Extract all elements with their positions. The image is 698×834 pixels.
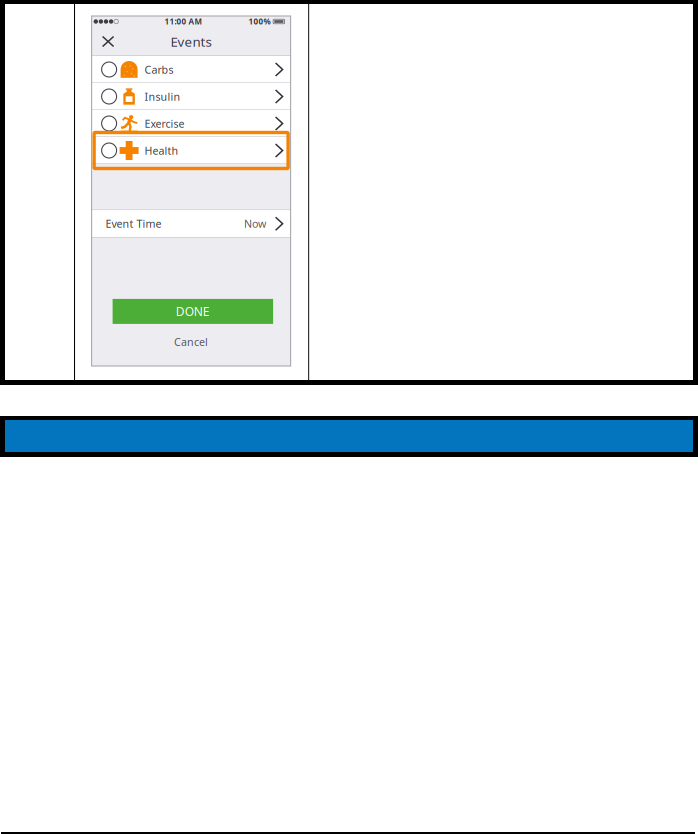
- staticText: 100%: [249, 16, 271, 27]
- staticText: Now: [244, 217, 266, 231]
- staticText: Event Time: [106, 217, 162, 231]
- staticText: Carbs: [145, 62, 174, 77]
- staticText: DONE: [176, 303, 210, 319]
- button[interactable]: Event Time: [92, 210, 291, 237]
- button[interactable]: Health: [92, 137, 291, 164]
- button[interactable]: Carbs: [92, 56, 291, 83]
- button[interactable]: Insulin: [92, 83, 291, 110]
- staticText: Exercise: [145, 116, 185, 131]
- staticText: Cancel: [174, 335, 208, 349]
- staticText: Events: [171, 33, 212, 50]
- staticText: Insulin: [145, 89, 181, 104]
- button[interactable]: Cancel: [92, 335, 291, 349]
- button[interactable]: Exercise: [92, 110, 291, 137]
- staticText: 11:00 AM: [164, 16, 202, 27]
- staticText: Health: [145, 143, 179, 158]
- button[interactable]: Close: [92, 27, 123, 55]
- button[interactable]: DONE: [113, 299, 273, 324]
